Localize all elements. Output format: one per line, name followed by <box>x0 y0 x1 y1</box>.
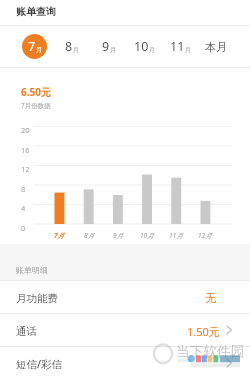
button[interactable]: 9 <box>90 26 126 67</box>
staticText: 0 <box>21 223 26 233</box>
staticText: 7月 <box>54 231 65 240</box>
staticText: 12月 <box>198 231 212 240</box>
staticText: 4 <box>21 203 26 213</box>
staticText: 月 <box>185 46 191 54</box>
button[interactable]: 8 <box>53 26 90 67</box>
button[interactable]: 通话 <box>0 314 250 346</box>
staticText: 无 <box>205 291 216 305</box>
staticText: 7 <box>28 38 36 55</box>
staticText: 本月 <box>205 40 227 54</box>
staticText: 11 <box>170 38 185 55</box>
staticText: 16 <box>21 145 30 155</box>
button[interactable]: 本月 <box>198 26 234 67</box>
staticText: www <box>178 356 193 364</box>
staticText: 10 <box>134 38 149 55</box>
button[interactable]: 11 <box>162 26 198 67</box>
staticText: 当下软件园 <box>176 343 245 360</box>
staticText: 短信/彩信 <box>16 357 63 371</box>
button[interactable]: 短信/彩信 <box>0 347 250 376</box>
staticText: 月 <box>149 46 155 54</box>
staticText: 8 <box>65 38 73 55</box>
staticText: 月 <box>73 46 79 54</box>
staticText: 通话 <box>16 325 37 338</box>
button[interactable]: 月功能费 <box>0 281 250 313</box>
staticText: 7月份数据 <box>21 101 51 110</box>
staticText: 月功能费 <box>16 292 58 305</box>
staticText: 账单查询 <box>16 5 56 18</box>
staticText: 8月 <box>84 231 95 240</box>
staticText: 11月 <box>169 231 183 240</box>
staticText: 9月 <box>113 231 124 240</box>
staticText: 月 <box>36 46 42 54</box>
staticText: 6.50元 <box>21 85 51 99</box>
staticText: 月 <box>110 46 116 54</box>
staticText: 9 <box>102 38 110 55</box>
staticText: 8 <box>21 184 26 194</box>
staticText: 1.50元 <box>187 324 220 339</box>
staticText: 20 <box>21 125 30 135</box>
staticText: 12 <box>21 164 30 174</box>
staticText: 账单明细 <box>16 265 48 275</box>
button[interactable]: 10 <box>126 26 162 67</box>
button[interactable]: 7 <box>16 26 53 67</box>
staticText: 10月 <box>140 231 154 240</box>
